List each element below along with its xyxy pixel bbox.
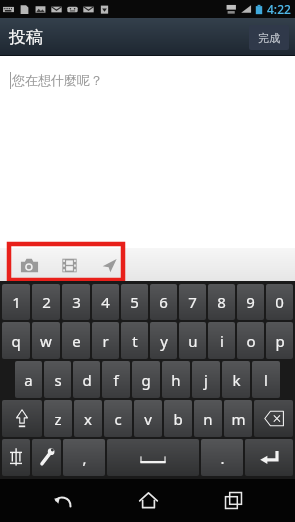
staticText: 3 (72, 292, 81, 312)
staticText: 7 (188, 292, 197, 312)
staticText: f (113, 370, 119, 390)
button[interactable]: 4 (92, 284, 119, 320)
button[interactable]: p (266, 322, 293, 359)
button[interactable]: y (150, 322, 177, 359)
button[interactable]: k (222, 361, 250, 398)
staticText: 8 (217, 292, 226, 312)
button[interactable]: i (208, 322, 235, 359)
staticText: k (232, 370, 241, 390)
button[interactable]: l (252, 361, 280, 398)
button[interactable]: 6 (150, 284, 177, 320)
button[interactable]: 3 (62, 284, 90, 320)
staticText: y (160, 331, 168, 351)
button[interactable]: g (132, 361, 160, 398)
button[interactable]: n (194, 400, 222, 437)
button[interactable]: Shift (2, 400, 42, 437)
button[interactable]: Recents (209, 479, 257, 522)
staticText: s (54, 370, 62, 390)
button[interactable]: . (201, 439, 243, 476)
button[interactable]: o (237, 322, 264, 359)
button[interactable]: 2 (32, 284, 60, 320)
staticText: . (220, 448, 225, 468)
staticText: d (82, 370, 92, 390)
staticText: r (102, 331, 109, 351)
button[interactable]: 1 (2, 284, 30, 320)
staticText: 6 (159, 292, 168, 312)
button[interactable]: Enter (245, 439, 293, 476)
staticText: m (231, 409, 246, 429)
button[interactable]: q (2, 322, 30, 359)
button[interactable]: 9 (237, 284, 264, 320)
button[interactable]: b (164, 400, 192, 437)
button[interactable]: x (74, 400, 102, 437)
staticText: 4 (101, 292, 110, 312)
button[interactable]: t (121, 322, 148, 359)
button[interactable]: a (15, 361, 42, 398)
staticText: w (40, 331, 52, 351)
button[interactable]: v (134, 400, 162, 437)
staticText: x (84, 409, 92, 429)
button[interactable]: d (73, 361, 100, 398)
staticText: 5 (130, 292, 139, 312)
button[interactable]: 8 (208, 284, 235, 320)
staticText: 9 (246, 292, 255, 312)
button[interactable]: f (102, 361, 130, 398)
staticText: z (54, 409, 62, 429)
button[interactable]: Delete (254, 400, 293, 437)
staticText: t (132, 331, 138, 351)
staticText: u (188, 331, 198, 351)
button[interactable]: 0 (266, 284, 293, 320)
staticText: h (171, 370, 181, 390)
staticText: 完成 (258, 31, 280, 45)
staticText: 1 (12, 292, 21, 312)
button[interactable]: r (92, 322, 119, 359)
staticText: q (11, 331, 21, 351)
button[interactable]: , (63, 439, 105, 476)
button[interactable]: u (179, 322, 206, 359)
button[interactable]: j (192, 361, 220, 398)
staticText: a (24, 370, 33, 390)
staticText: 您在想什麼呢？ (12, 72, 103, 88)
button[interactable]: z (44, 400, 72, 437)
button[interactable]: s (44, 361, 71, 398)
staticText: j (204, 370, 208, 390)
staticText: 2 (42, 292, 51, 312)
staticText: 投稿 (9, 27, 43, 48)
button[interactable]: m (224, 400, 252, 437)
staticText: p (275, 331, 285, 351)
staticText: 4:22 (267, 1, 291, 17)
staticText: g (141, 370, 151, 390)
staticText: i (220, 331, 224, 351)
button[interactable]: 您在想什麼呢？ (0, 56, 295, 241)
button[interactable]: Space (107, 439, 199, 476)
button[interactable]: 7 (179, 284, 206, 320)
button[interactable]: Camera (14, 250, 44, 280)
staticText: l (264, 370, 268, 390)
staticText: , (82, 448, 87, 468)
staticText: b (173, 409, 183, 429)
button[interactable]: Video (54, 250, 84, 280)
staticText: c (114, 409, 122, 429)
button[interactable]: Back (38, 479, 86, 522)
staticText: v (144, 409, 152, 429)
button[interactable]: Home (124, 479, 172, 522)
button[interactable]: h (162, 361, 190, 398)
staticText: n (203, 409, 213, 429)
button[interactable]: Settings (32, 439, 61, 476)
staticText: o (246, 331, 256, 351)
button[interactable]: Location (94, 250, 124, 280)
button[interactable]: c (104, 400, 132, 437)
staticText: 0 (275, 292, 284, 312)
button[interactable]: e (62, 322, 90, 359)
button[interactable]: 完成 (249, 25, 289, 50)
staticText: e (72, 331, 81, 351)
button[interactable]: Language (2, 439, 30, 476)
button[interactable]: 5 (121, 284, 148, 320)
button[interactable]: w (32, 322, 60, 359)
